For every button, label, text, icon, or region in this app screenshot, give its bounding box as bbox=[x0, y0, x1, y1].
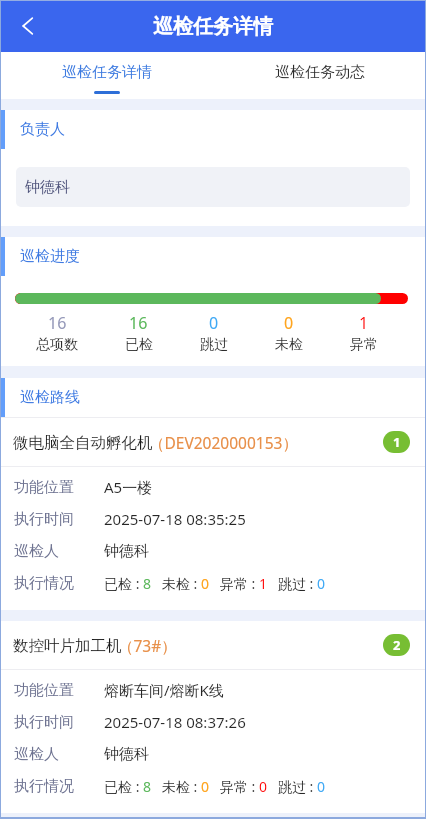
staticText: 2 bbox=[393, 636, 401, 654]
staticText: 2025-07-18 08:35:25 bbox=[104, 509, 246, 529]
staticText: 执行时间 bbox=[14, 510, 74, 529]
button[interactable]: 巡检任务详情 bbox=[0, 52, 213, 99]
button[interactable]: 数控叶片加工机 bbox=[0, 621, 426, 813]
staticText: 钟德科 bbox=[104, 542, 149, 561]
staticText: 跳过 bbox=[200, 336, 228, 354]
staticText: 数控叶片加工机 bbox=[13, 636, 122, 656]
staticText: 微电脑全自动孵化机 bbox=[13, 433, 153, 453]
button[interactable]: 微电脑全自动孵化机 bbox=[0, 418, 426, 610]
staticText: 巡检任务详情 bbox=[62, 63, 152, 82]
staticText: 巡检人 bbox=[14, 542, 59, 561]
staticText: 未检 bbox=[275, 336, 303, 354]
staticText: 执行情况 bbox=[14, 574, 74, 593]
staticText: 2025-07-18 08:37:26 bbox=[104, 712, 246, 732]
staticText: 总项数 bbox=[36, 336, 78, 354]
staticText: 巡检路线 bbox=[20, 388, 80, 407]
staticText: 0 bbox=[284, 312, 294, 334]
staticText: 16 bbox=[48, 312, 67, 334]
staticText: 巡检进度 bbox=[20, 247, 80, 266]
staticText: A5一楼 bbox=[104, 477, 153, 497]
button[interactable]: 1 bbox=[326, 312, 401, 354]
staticText: 巡检人 bbox=[14, 745, 59, 764]
button[interactable]: 0 bbox=[251, 312, 326, 354]
staticText: 异常 bbox=[350, 336, 378, 354]
staticText: 16 bbox=[129, 312, 148, 334]
staticText: 已检 : 8 未检 : 0 异常 : 0 跳过 : 0 bbox=[104, 777, 325, 796]
staticText: （73#） bbox=[118, 635, 177, 656]
staticText: 负责人 bbox=[20, 120, 65, 139]
staticText: 钟德科 bbox=[25, 178, 70, 197]
button[interactable]: 16 bbox=[101, 312, 176, 354]
staticText: 执行情况 bbox=[14, 777, 74, 796]
button[interactable]: 巡检任务动态 bbox=[213, 52, 426, 99]
staticText: 执行时间 bbox=[14, 713, 74, 732]
staticText: 功能位置 bbox=[14, 681, 74, 700]
staticText: 已检 bbox=[125, 336, 153, 354]
staticText: 0 bbox=[209, 312, 219, 334]
staticText: 巡检任务详情 bbox=[153, 14, 273, 39]
staticText: （DEV2020000153） bbox=[149, 432, 298, 453]
staticText: 已检 : 8 未检 : 0 异常 : 1 跳过 : 0 bbox=[104, 574, 325, 593]
staticText: 熔断车间/熔断K线 bbox=[104, 680, 224, 700]
staticText: 1 bbox=[359, 312, 369, 334]
staticText: 功能位置 bbox=[14, 478, 74, 497]
button[interactable]: Back bbox=[0, 0, 55, 52]
button[interactable]: 0 bbox=[176, 312, 251, 354]
button[interactable]: 16 bbox=[13, 312, 101, 354]
staticText: 巡检任务动态 bbox=[275, 63, 365, 82]
staticText: 1 bbox=[393, 433, 401, 451]
staticText: 钟德科 bbox=[104, 745, 149, 764]
